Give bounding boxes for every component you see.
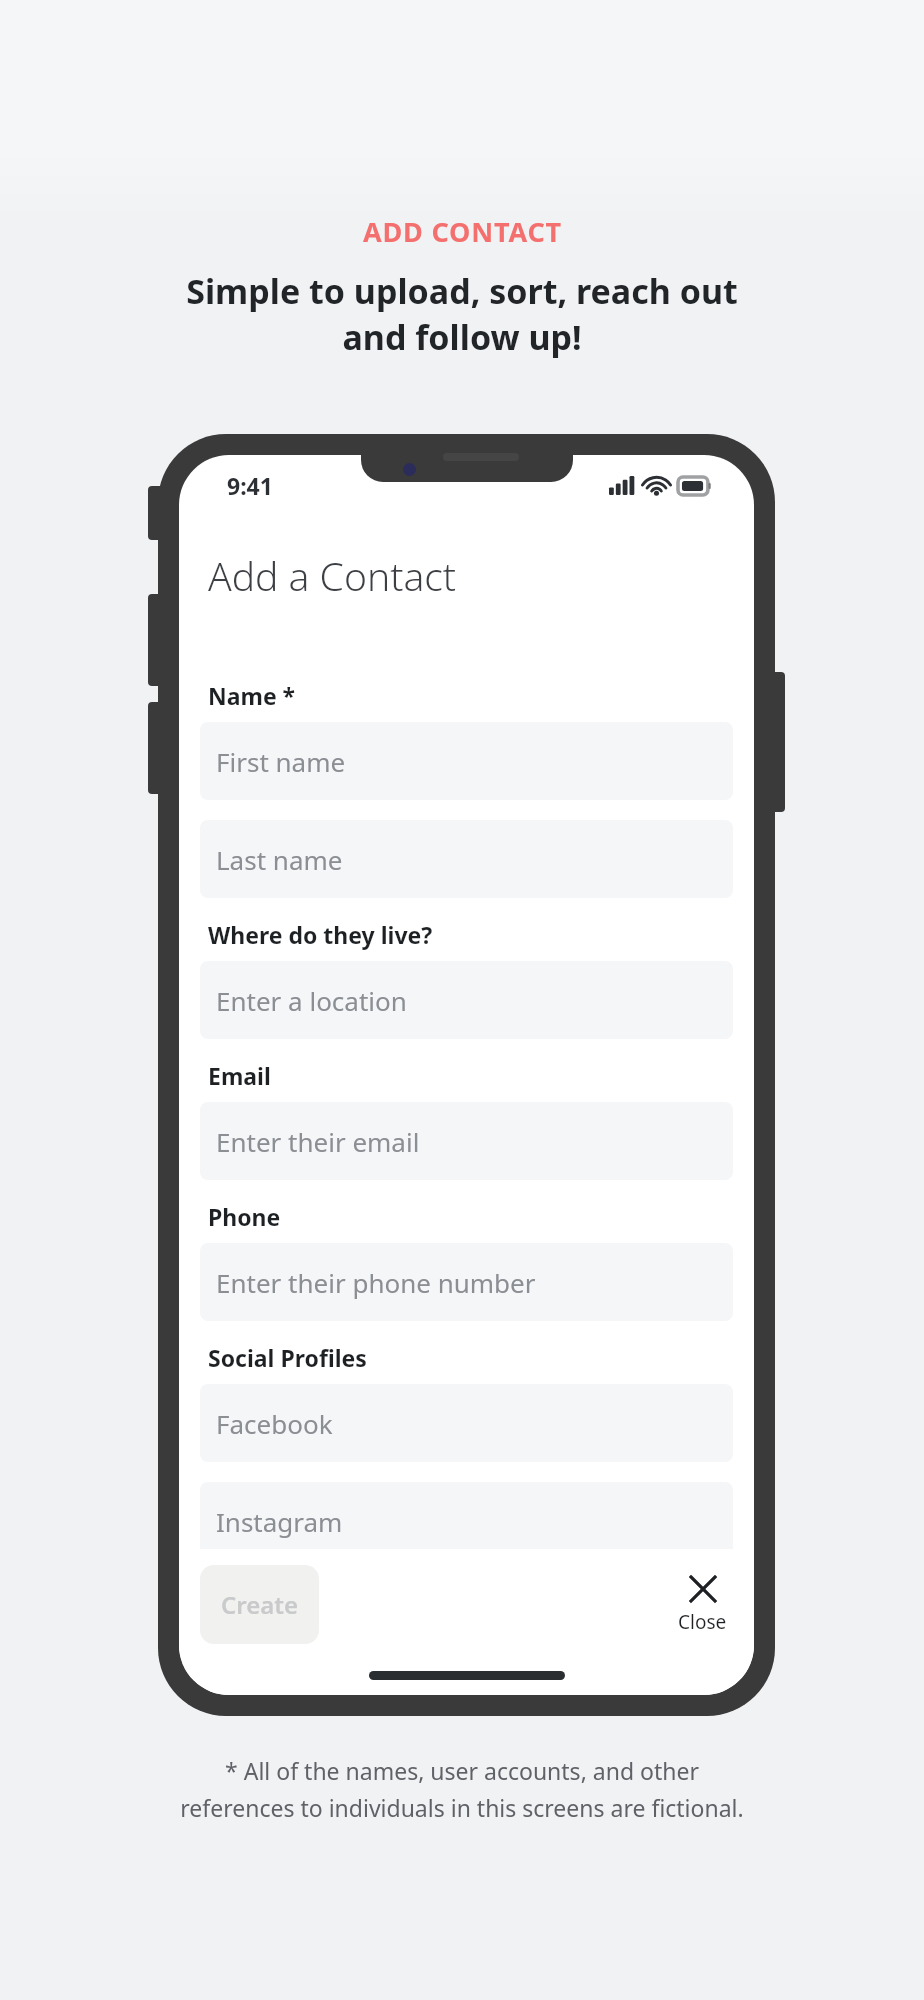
staticText: Close bbox=[678, 1609, 727, 1635]
button[interactable]: Facebook bbox=[200, 1384, 733, 1462]
button[interactable]: Create bbox=[200, 1565, 319, 1644]
staticText: Last name bbox=[216, 842, 343, 877]
button[interactable]: Enter their phone number bbox=[200, 1243, 733, 1321]
staticText: Social Profiles bbox=[208, 1342, 367, 1373]
button[interactable]: Instagram bbox=[200, 1482, 733, 1560]
staticText: * All of the names, user accounts, and o… bbox=[180, 1755, 744, 1824]
staticText: 9:41 bbox=[227, 470, 273, 501]
staticText: Instagram bbox=[216, 1504, 343, 1539]
button[interactable]: Enter their email bbox=[200, 1102, 733, 1180]
button[interactable]: Close bbox=[672, 1570, 733, 1639]
staticText: Enter their phone number bbox=[216, 1265, 536, 1300]
button[interactable]: First name bbox=[200, 722, 733, 800]
staticText: First name bbox=[216, 744, 346, 779]
staticText: Where do they live? bbox=[208, 919, 433, 950]
staticText: Email bbox=[208, 1060, 271, 1091]
staticText: Enter their email bbox=[216, 1124, 420, 1159]
staticText: Simple to upload, sort, reach out and fo… bbox=[186, 268, 738, 360]
button[interactable]: Enter a location bbox=[200, 961, 733, 1039]
staticText: Create bbox=[221, 1588, 299, 1621]
staticText: Name * bbox=[208, 680, 296, 711]
button[interactable]: Last name bbox=[200, 820, 733, 898]
staticText: ADD CONTACT bbox=[363, 213, 562, 250]
staticText: Facebook bbox=[216, 1406, 333, 1441]
staticText: Add a Contact bbox=[208, 549, 457, 602]
staticText: Enter a location bbox=[216, 983, 407, 1018]
staticText: Phone bbox=[208, 1201, 281, 1232]
